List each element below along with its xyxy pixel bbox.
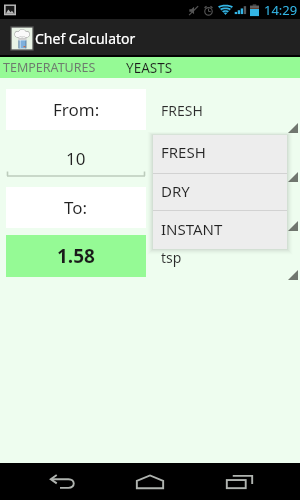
staticText: FRESH — [161, 101, 203, 120]
staticText: INSTANT — [161, 219, 223, 239]
staticText: 10 — [66, 147, 86, 170]
button[interactable]: To: — [6, 187, 146, 228]
button[interactable]: 1.58 — [6, 235, 146, 277]
button[interactable]: Home — [123, 463, 177, 500]
staticText: To: — [64, 196, 88, 219]
staticText: DRY — [161, 181, 190, 201]
button[interactable]: tsp — [151, 242, 286, 272]
button[interactable]: FRESH — [151, 95, 286, 125]
button[interactable]: Recents — [212, 463, 266, 500]
button[interactable]: DRY — [153, 174, 287, 210]
staticText: FRESH — [161, 142, 206, 162]
button[interactable]: From: — [6, 89, 146, 130]
staticText: 1.58 — [57, 243, 95, 269]
staticText: From: — [53, 98, 100, 121]
staticText: TEMPERATURES — [3, 59, 96, 76]
staticText: tsp — [161, 248, 182, 267]
staticText: Chef Calculator — [35, 29, 136, 48]
button[interactable]: Back — [35, 463, 89, 500]
button[interactable]: INSTANT — [153, 211, 287, 249]
button[interactable]: TEMPERATURES — [0, 57, 99, 78]
button[interactable]: YEASTS — [99, 57, 199, 78]
staticText: 14:29 — [264, 1, 298, 19]
button[interactable]: FRESH — [153, 135, 287, 173]
staticText: YEASTS — [126, 59, 173, 77]
